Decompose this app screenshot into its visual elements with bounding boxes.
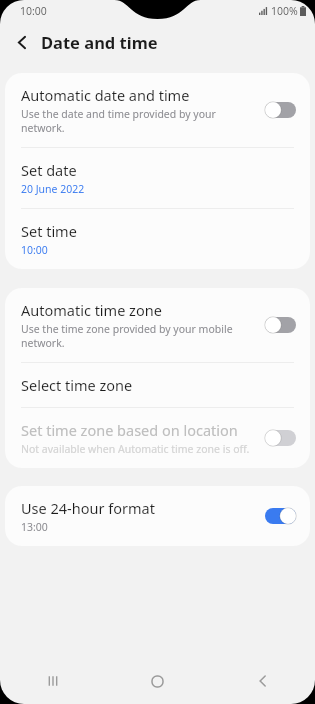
- staticText: Not available when Automatic time zone i…: [21, 442, 250, 456]
- staticText: 10:00: [20, 4, 47, 18]
- button[interactable]: Toggle: [265, 102, 296, 118]
- staticText: Date and time: [41, 31, 158, 53]
- button[interactable]: Recent apps: [0, 658, 105, 704]
- staticText: 13:00: [21, 520, 48, 534]
- staticText: 20 June 2022: [21, 182, 85, 196]
- button[interactable]: Set date: [5, 148, 310, 208]
- button[interactable]: Navigate up: [8, 28, 36, 56]
- button[interactable]: Toggle: [265, 430, 296, 446]
- staticText: Use the time zone provided by your mobil…: [21, 322, 233, 350]
- staticText: Select time zone: [21, 375, 133, 395]
- button[interactable]: Home: [105, 658, 210, 704]
- staticText: Set time: [21, 221, 77, 241]
- staticText: Set time zone based on location: [21, 420, 238, 440]
- button[interactable]: Back: [210, 658, 315, 704]
- staticText: Automatic date and time: [21, 85, 190, 105]
- button[interactable]: Automatic time zone: [5, 288, 310, 362]
- staticText: 100%: [271, 4, 298, 18]
- staticText: Use 24-hour format: [21, 498, 155, 518]
- staticText: 10:00: [21, 243, 48, 257]
- button[interactable]: Use 24-hour format: [5, 486, 310, 546]
- staticText: Automatic time zone: [21, 300, 162, 320]
- button[interactable]: Toggle: [265, 508, 296, 524]
- button[interactable]: Automatic date and time: [5, 73, 310, 147]
- button[interactable]: Select time zone: [5, 363, 310, 407]
- button[interactable]: Set time zone based on location: [5, 408, 310, 468]
- staticText: Use the date and time provided by your n…: [21, 107, 216, 135]
- staticText: Set date: [21, 160, 77, 180]
- button[interactable]: Set time: [5, 209, 310, 269]
- button[interactable]: Toggle: [265, 317, 296, 333]
